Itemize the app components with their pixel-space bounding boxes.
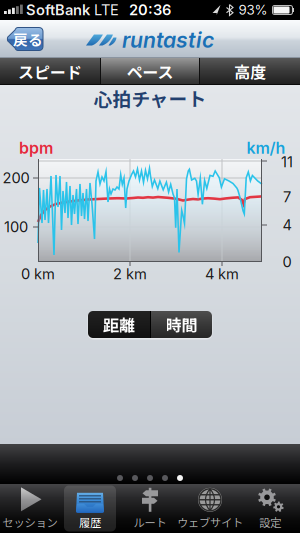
- button[interactable]: 戻る: [7, 27, 43, 50]
- staticText: 高度: [234, 60, 266, 83]
- staticText: km/h: [246, 138, 285, 158]
- staticText: 4 km: [205, 265, 239, 283]
- button[interactable]: 履歴: [60, 484, 120, 533]
- staticText: ウェブサイト: [177, 514, 243, 530]
- button[interactable]: スピード: [0, 58, 100, 85]
- button[interactable]: 高度: [200, 58, 300, 85]
- staticText: 心拍チャート: [93, 84, 206, 111]
- button[interactable]: セッション: [0, 484, 60, 533]
- staticText: 戻る: [13, 28, 43, 50]
- staticText: ペース: [126, 60, 173, 83]
- staticText: 200: [2, 169, 29, 187]
- staticText: runtastic: [122, 27, 214, 53]
- button[interactable]: 設定: [240, 484, 300, 533]
- staticText: SoftBank: [26, 1, 90, 19]
- staticText: 20:36: [129, 1, 171, 19]
- staticText: セッション: [2, 514, 57, 530]
- staticText: 0 km: [21, 265, 55, 283]
- button[interactable]: ウェブサイト: [180, 484, 240, 533]
- button[interactable]: 距離: [88, 311, 150, 338]
- staticText: ルート: [133, 514, 166, 530]
- button[interactable]: ルート: [120, 484, 180, 533]
- staticText: 2 km: [113, 265, 147, 283]
- staticText: LTE: [94, 1, 119, 19]
- staticText: 設定: [259, 514, 281, 530]
- staticText: 距離: [103, 313, 135, 336]
- staticText: bpm: [19, 138, 53, 158]
- button[interactable]: 時間: [151, 311, 212, 338]
- staticText: 93%: [238, 2, 267, 18]
- staticText: 11: [281, 153, 293, 171]
- staticText: 0: [282, 253, 291, 271]
- button[interactable]: ペース: [101, 58, 199, 85]
- staticText: 履歴: [79, 514, 101, 530]
- staticText: 時間: [165, 313, 197, 336]
- staticText: スピード: [18, 60, 82, 83]
- staticText: 100: [4, 218, 28, 236]
- staticText: 4: [282, 216, 291, 234]
- staticText: 7: [283, 188, 291, 206]
